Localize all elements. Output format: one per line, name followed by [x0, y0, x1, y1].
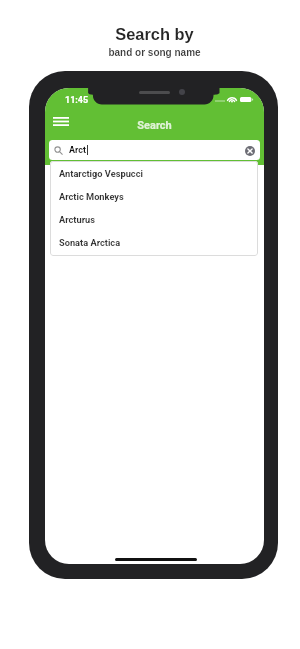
staticText: Antarctigo Vespucci [59, 168, 143, 179]
button[interactable]: Arctic Monkeys [50, 185, 258, 208]
button[interactable]: Menu [49, 110, 73, 132]
staticText: Arcturus [59, 214, 95, 225]
button[interactable]: Clear text [242, 143, 257, 158]
staticText: Arct [69, 145, 86, 156]
staticText: Sonata Arctica [59, 237, 121, 248]
button[interactable]: Antarctigo Vespucci [50, 161, 258, 185]
button[interactable]: Arct [49, 140, 260, 160]
staticText: Search [137, 119, 172, 132]
button[interactable]: Sonata Arctica [50, 231, 258, 254]
staticText: Arctic Monkeys [59, 191, 124, 202]
staticText: 11:45 [65, 95, 89, 106]
staticText: band or song name [108, 47, 201, 58]
staticText: Search by [115, 25, 194, 43]
button[interactable]: Arcturus [50, 208, 258, 231]
